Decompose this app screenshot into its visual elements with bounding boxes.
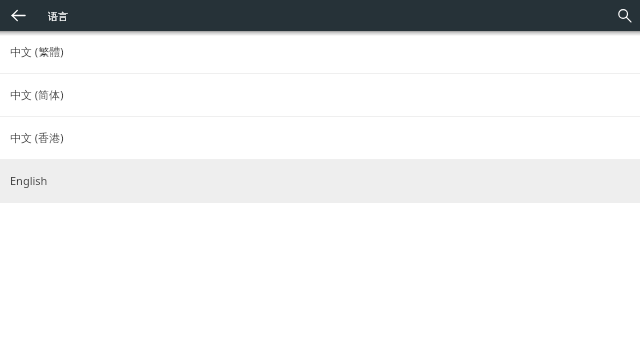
button[interactable]: 中文 (简体) — [0, 74, 640, 117]
button[interactable]: 中文 (繁體) — [0, 31, 640, 74]
button[interactable]: Back — [3, 0, 34, 31]
button[interactable]: Search — [609, 0, 640, 31]
staticText: 语言 — [48, 10, 68, 23]
button[interactable]: 中文 (香港) — [0, 117, 640, 160]
staticText: English — [10, 173, 48, 188]
staticText: 中文 (简体) — [10, 87, 64, 102]
staticText: 中文 (繁體) — [10, 44, 64, 59]
button[interactable]: English — [0, 160, 640, 203]
staticText: 中文 (香港) — [10, 130, 64, 145]
